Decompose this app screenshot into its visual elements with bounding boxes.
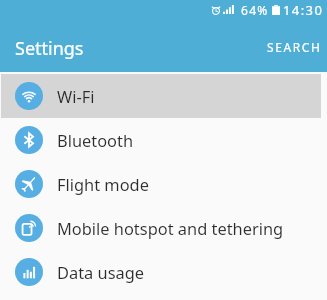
button[interactable]: Bluetooth — [0, 118, 327, 162]
staticText: Wi-Fi — [57, 85, 95, 107]
button[interactable]: SEARCH — [262, 34, 327, 60]
staticText: Flight mode — [57, 173, 149, 195]
staticText: Data usage — [57, 261, 145, 283]
button[interactable]: Data usage — [0, 250, 327, 294]
staticText: Mobile hotspot and tethering — [57, 217, 284, 239]
staticText: Bluetooth — [57, 129, 134, 151]
staticText: 14:30 — [283, 1, 324, 19]
button[interactable]: Wi-Fi — [0, 74, 327, 118]
staticText: SEARCH — [267, 39, 322, 55]
button[interactable]: Flight mode — [0, 162, 327, 206]
staticText: 64% — [241, 2, 269, 18]
staticText: Settings — [15, 36, 84, 61]
button[interactable]: Mobile hotspot and tethering — [0, 206, 327, 250]
